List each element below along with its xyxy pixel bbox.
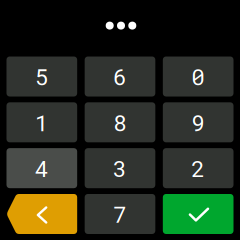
button[interactable]: 0	[163, 56, 233, 96]
staticText: 1	[35, 107, 49, 137]
staticText: 8	[113, 107, 127, 137]
staticText: 3	[113, 153, 127, 183]
staticText: 5	[35, 62, 49, 91]
button[interactable]: 7	[85, 194, 155, 234]
button[interactable]: Confirm	[163, 194, 233, 234]
staticText: 7	[113, 199, 127, 229]
button[interactable]: 4	[6, 148, 77, 188]
button[interactable]: 1	[6, 102, 77, 142]
staticText: 9	[191, 107, 205, 137]
button[interactable]: 6	[85, 56, 155, 96]
staticText: 2	[191, 153, 205, 183]
staticText: 6	[113, 62, 127, 91]
button[interactable]: 3	[85, 148, 155, 188]
button[interactable]: Delete	[6, 194, 77, 234]
button[interactable]: 9	[163, 102, 233, 142]
staticText: 0	[191, 62, 205, 91]
button[interactable]: 8	[85, 102, 155, 142]
button[interactable]: 5	[6, 56, 77, 96]
staticText: 4	[35, 153, 49, 183]
button[interactable]: 2	[163, 148, 233, 188]
